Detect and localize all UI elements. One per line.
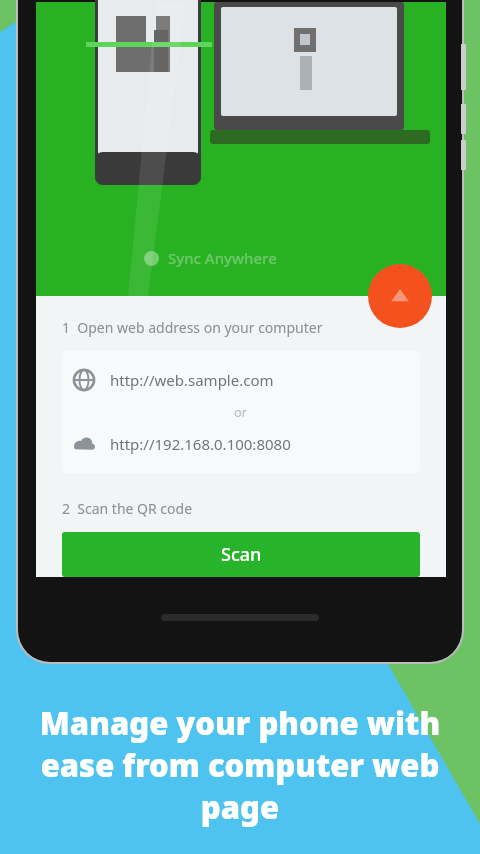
staticText: http://web.sample.com: [110, 370, 274, 390]
staticText: 2 Scan the QR code: [62, 499, 193, 518]
button[interactable]: Scan: [62, 532, 420, 577]
button[interactable]: http://web.sample.com: [62, 357, 420, 403]
button[interactable]: http://192.168.0.100:8080: [62, 421, 420, 467]
staticText: Scan: [221, 542, 262, 567]
staticText: 1 Open web address on your computer: [62, 318, 323, 337]
staticText: Sync Anywhere: [168, 248, 277, 268]
staticText: Manage your phone with ease from compute…: [22, 702, 458, 828]
staticText: or: [234, 403, 248, 421]
staticText: http://192.168.0.100:8080: [110, 434, 291, 454]
button[interactable]: Add: [368, 264, 432, 328]
